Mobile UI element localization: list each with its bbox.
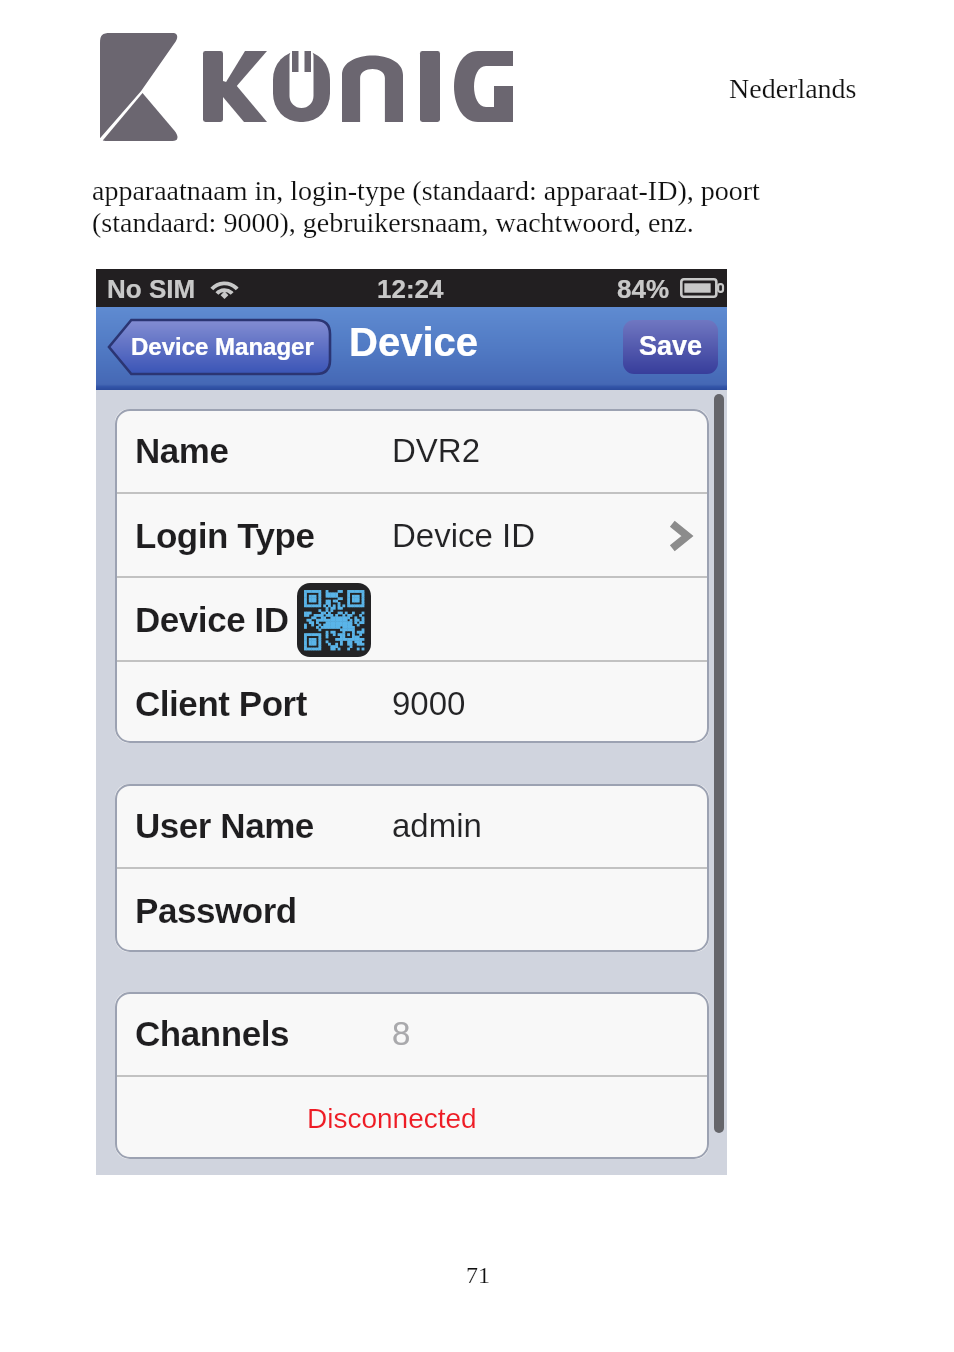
staticText: admin: [392, 807, 482, 844]
button[interactable]: Password: [115, 869, 709, 952]
other: Choose login type: [670, 522, 689, 550]
staticText: Channels: [135, 1014, 289, 1053]
staticText: Device ID: [392, 517, 536, 554]
staticText: Device: [349, 320, 478, 365]
staticText: No SIM: [107, 274, 196, 303]
button[interactable]: Name: [115, 409, 709, 492]
button[interactable]: Device Manager: [107, 320, 330, 374]
button[interactable]: Disconnected: [115, 1077, 709, 1159]
staticText: Disconnected: [307, 1103, 477, 1134]
staticText: Password: [135, 891, 297, 930]
staticText: User Name: [135, 806, 314, 845]
staticText: Device ID: [135, 600, 289, 639]
other: Wi-Fi: [209, 276, 240, 299]
button[interactable]: Save: [623, 320, 718, 374]
staticText: DVR2: [392, 432, 481, 469]
button[interactable]: Client Port: [115, 662, 709, 743]
other: Battery 84 percent: [680, 278, 724, 298]
button[interactable]: Device ID: [115, 578, 709, 661]
staticText: Save: [639, 331, 703, 361]
staticText: 84%: [617, 274, 670, 303]
button[interactable]: User Name: [115, 784, 709, 867]
staticText: (standaard: 9000), gebruikersnaam, wacht…: [92, 207, 694, 238]
staticText: Device Manager: [131, 333, 314, 360]
staticText: 12:24: [377, 274, 444, 303]
staticText: Login Type: [135, 516, 315, 555]
staticText: Name: [135, 431, 229, 470]
staticText: Client Port: [135, 684, 307, 723]
staticText: 8: [392, 1015, 411, 1052]
staticText: 9000: [392, 685, 466, 722]
button[interactable]: Channels: [115, 992, 709, 1075]
staticText: apparaatnaam in, login-type (standaard: …: [92, 175, 760, 206]
staticText: Nederlands: [729, 73, 857, 104]
staticText: 71: [466, 1262, 490, 1289]
button[interactable]: Scan device QR code: [297, 583, 371, 657]
button[interactable]: Login Type: [115, 494, 709, 577]
